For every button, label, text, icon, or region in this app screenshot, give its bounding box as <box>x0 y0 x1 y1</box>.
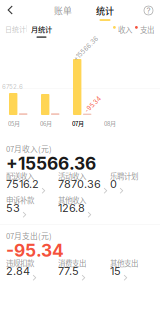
staticText: 07月收入(元) <box>6 143 52 154</box>
staticText: 06月 <box>40 119 52 128</box>
staticText: 07月 <box>72 119 84 128</box>
staticText: 配送收入 <box>6 171 34 181</box>
staticText: 统计 <box>96 4 114 17</box>
button[interactable]: 消费支出 <box>58 259 108 278</box>
staticText: 53 <box>6 201 20 215</box>
staticText: 日统计 <box>5 24 26 34</box>
staticText: 7870.36 <box>58 177 101 191</box>
staticText: 2.84 <box>6 264 30 278</box>
button[interactable]: Help <box>142 4 155 17</box>
staticText: 其他收入 <box>58 195 86 205</box>
button[interactable]: 统计 <box>96 4 114 21</box>
staticText: 消费支出 <box>58 258 86 268</box>
staticText: 支出 <box>140 24 154 35</box>
staticText: 月统计 <box>31 24 52 34</box>
staticText: 07月支出(元) <box>6 230 52 241</box>
staticText: 77.5 <box>58 264 79 278</box>
staticText: 账单 <box>54 4 72 17</box>
staticText: 收入 <box>118 24 132 35</box>
button[interactable]: 其他支出 <box>110 259 160 278</box>
button[interactable]: 日统计 <box>5 24 26 34</box>
staticText: 6752.6 <box>2 83 23 90</box>
staticText: 违规扣款 <box>6 258 34 268</box>
button[interactable]: 活动收入 <box>58 172 108 191</box>
staticText: ? <box>146 6 150 15</box>
staticText: 活动收入 <box>58 171 86 181</box>
button[interactable]: 月统计 <box>31 24 52 38</box>
staticText: 乐聘计划 <box>110 171 138 181</box>
button[interactable]: 配送收入 <box>6 172 56 191</box>
button[interactable]: 账单 <box>54 4 72 17</box>
button[interactable]: 乐聘计划 <box>110 172 160 191</box>
staticText: +15566.36 <box>70 45 102 52</box>
staticText: -95.34 <box>6 240 64 261</box>
button[interactable]: Back <box>4 2 17 18</box>
staticText: 15 <box>110 264 121 278</box>
staticText: 其他支出 <box>110 258 138 268</box>
staticText: -95.34 <box>83 101 103 108</box>
staticText: 126.8 <box>58 201 85 215</box>
staticText: 0 <box>110 177 117 191</box>
button[interactable]: 违规扣款 <box>6 259 56 278</box>
staticText: +15566.36 <box>6 153 96 174</box>
staticText: 05月 <box>8 119 20 128</box>
staticText: 申诉补款 <box>6 195 34 205</box>
staticText: 08月 <box>104 119 116 128</box>
button[interactable]: 其他收入 <box>58 196 108 215</box>
staticText: 7516.2 <box>6 177 39 191</box>
button[interactable]: 申诉补款 <box>6 196 56 215</box>
